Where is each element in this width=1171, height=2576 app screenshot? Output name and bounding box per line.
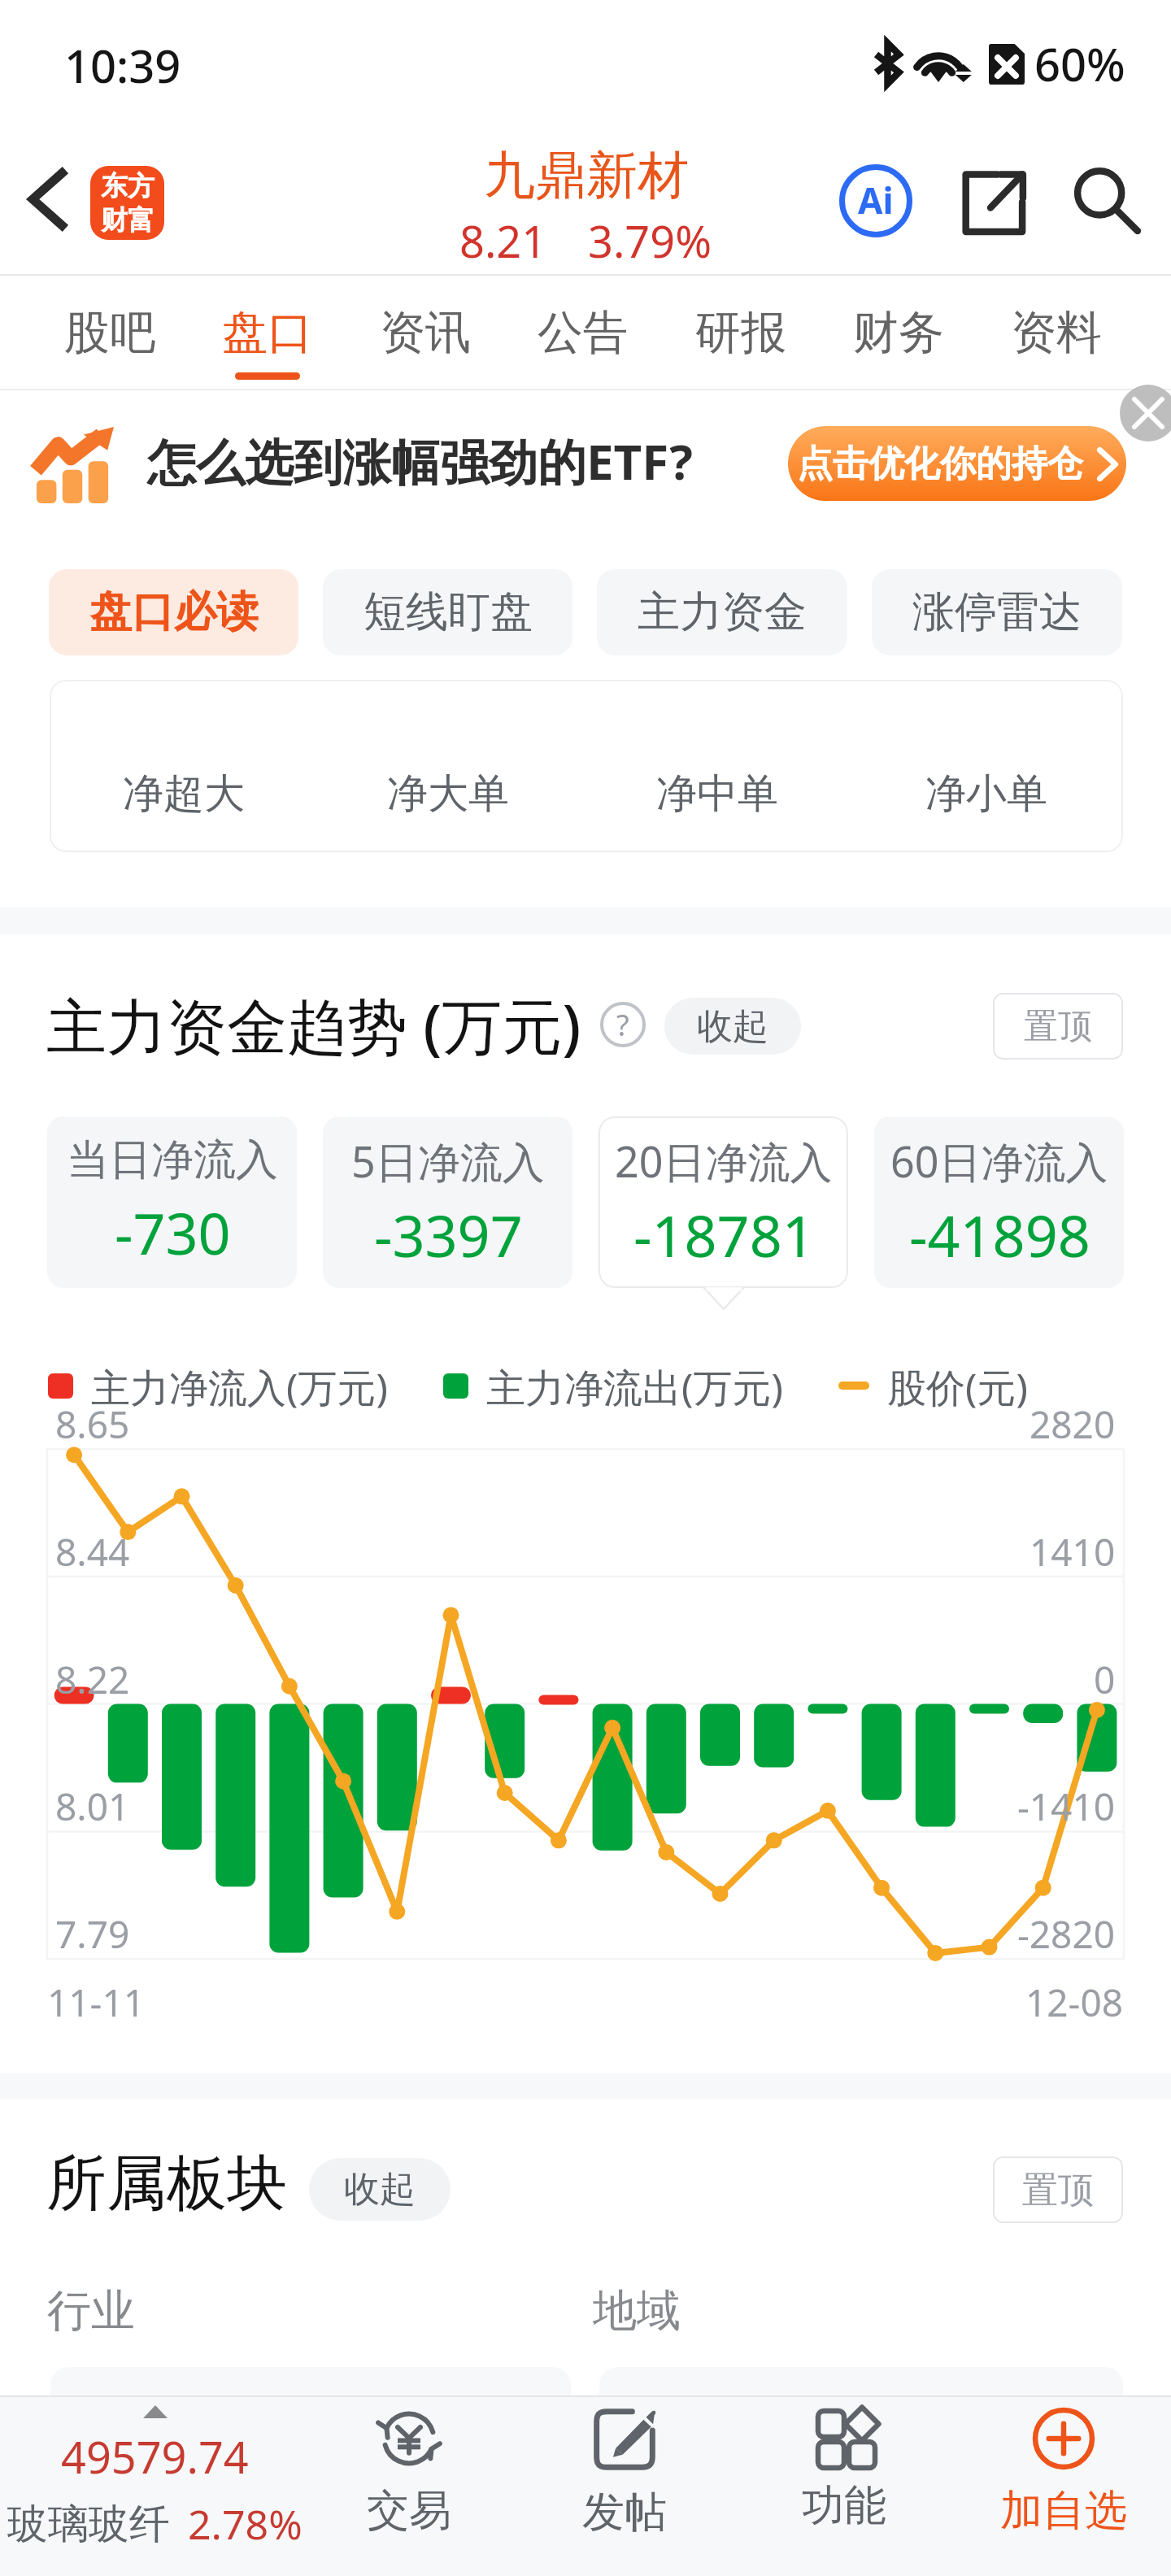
button[interactable]: 60日净流入 [874,1116,1124,1288]
button[interactable]: 财务 [820,276,977,390]
staticText: 49579.74 [61,2426,249,2487]
button[interactable]: 涨停雷达 [872,569,1122,655]
button[interactable]: 发帖 [527,2395,722,2576]
staticText: 净小单 [925,768,1047,820]
staticText: 8.01 [55,1781,130,1832]
button[interactable]: 加自选 [966,2395,1161,2576]
staticText: 发帖 [582,2486,667,2539]
staticText: -18781 [633,1196,815,1273]
button[interactable]: Help [600,1002,646,1047]
staticText: 5日净流入 [351,1132,545,1190]
button[interactable]: East Money [90,166,164,240]
staticText: ? [616,1005,629,1045]
staticText: 资讯 [380,304,471,362]
button[interactable]: 收起 [309,2158,451,2221]
button[interactable]: 20日净流入 [599,1116,848,1288]
button[interactable]: 点击优化你的持仓 [788,426,1126,501]
staticText: 玻璃玻纤 [7,2499,170,2550]
button[interactable]: 当日净流入 [47,1116,297,1288]
staticText: 主力资金 [638,585,807,639]
staticText: 2820 [1030,1399,1116,1450]
staticText: Ai [858,176,894,224]
button[interactable]: 净超大 [102,761,265,826]
staticText: 主力资金趋势 (万元) [46,984,581,1066]
button[interactable]: 短线盯盘 [323,569,572,655]
staticText: 11-11 [47,1977,146,2028]
staticText: 资料 [1011,304,1102,362]
button[interactable]: 研报 [662,276,820,390]
staticText: -3397 [374,1196,523,1273]
staticText: 九鼎新材 [484,143,689,207]
staticText: 1410 [1030,1526,1116,1577]
staticText: 所属板块 [46,2146,287,2221]
staticText: 10:39 [64,34,181,96]
staticText: 短线盯盘 [363,585,533,639]
button[interactable]: AI assistant [827,152,925,250]
staticText: -41898 [909,1196,1090,1273]
button[interactable]: Share [945,154,1043,251]
staticText: 8.65 [55,1399,130,1450]
button[interactable]: 净中单 [636,761,799,826]
staticText: 地域 [593,2283,681,2339]
button[interactable]: 资讯 [346,276,504,390]
staticText: 盘口 [222,304,313,362]
staticText: 60日净流入 [890,1132,1108,1190]
staticText: 主力净流出(万元) [486,1360,783,1411]
button[interactable]: 资料 [977,276,1135,390]
staticText: 盘口必读 [89,585,259,639]
staticText: 当日净流入 [67,1134,278,1187]
staticText: 12-08 [1025,1977,1124,2028]
staticText: 20日净流入 [615,1132,833,1190]
staticText: 收起 [697,1004,768,1049]
button[interactable]: 收起 [664,998,801,1055]
staticText: 2.78% [188,2496,303,2552]
staticText: 60% [1034,33,1125,94]
staticText: 置顶 [1022,2168,1094,2213]
staticText: 8.44 [55,1526,130,1577]
staticText: 东方 [101,169,155,203]
button[interactable]: 功能 [747,2395,942,2576]
staticText: 净大单 [387,768,509,820]
staticText: 置顶 [1024,1005,1092,1048]
button[interactable]: 交易 [311,2395,507,2576]
staticText: 3.79% [588,211,712,271]
staticText: 怎么选到涨幅强劲的ETF? [147,428,693,494]
staticText: -730 [115,1194,231,1271]
staticText: 交易 [367,2484,451,2538]
button[interactable]: 置顶 [993,2156,1123,2223]
button[interactable]: 盘口 [189,276,346,390]
button[interactable]: 净大单 [367,761,529,826]
staticText: -1410 [1017,1781,1116,1832]
staticText: 公告 [538,304,629,362]
button[interactable]: Close banner [1120,385,1171,442]
button[interactable]: 49579.74 [0,2395,309,2576]
staticText: -2820 [1017,1908,1116,1960]
staticText: 加自选 [1000,2484,1127,2538]
staticText: 收起 [344,2167,416,2212]
staticText: 8.22 [55,1654,130,1705]
button[interactable]: 怎么选到涨幅强劲的ETF? [0,390,1171,545]
staticText: 点击优化你的持仓 [797,442,1083,486]
staticText: 净中单 [656,768,778,820]
button[interactable]: 净小单 [905,761,1068,826]
staticText: 净超大 [123,768,245,820]
button[interactable]: 盘口必读 [49,569,298,655]
staticText: 7.79 [55,1908,130,1960]
staticText: 财务 [853,304,944,362]
button[interactable]: 公告 [504,276,662,390]
staticText: 股吧 [64,304,155,362]
button[interactable]: 主力资金 [597,569,847,655]
button[interactable]: Back [6,146,87,252]
staticText: 财富 [101,203,155,237]
staticText: 研报 [695,304,786,362]
staticText: 主力净流入(万元) [91,1360,388,1411]
button[interactable]: 置顶 [993,993,1123,1060]
staticText: 0 [1094,1654,1116,1705]
button[interactable]: 5日净流入 [323,1116,572,1288]
staticText: 涨停雷达 [912,585,1082,639]
button[interactable]: 股吧 [31,276,189,390]
button[interactable]: Search [1059,153,1156,250]
staticText: 行业 [47,2283,135,2339]
staticText: 股价(元) [887,1360,1028,1411]
staticText: 8.21 [459,211,547,271]
